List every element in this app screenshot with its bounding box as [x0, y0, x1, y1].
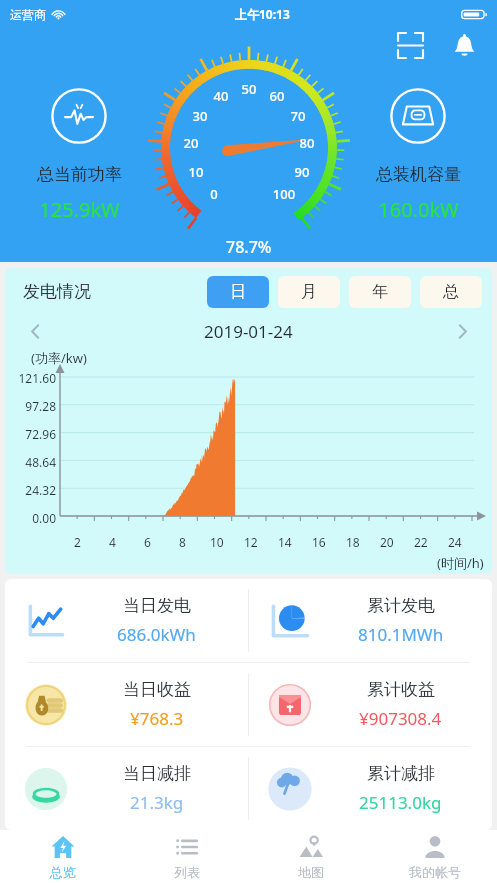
staticText: 地图: [298, 864, 324, 880]
staticText: 2: [74, 534, 81, 550]
staticText: 列表: [174, 864, 200, 880]
staticText: 160.0kW: [378, 196, 459, 223]
staticText: 21.3kg: [130, 791, 184, 814]
staticText: 100: [269, 185, 299, 203]
staticText: 10: [210, 534, 224, 550]
staticText: 18: [346, 534, 360, 550]
staticText: 78.7%: [226, 236, 272, 258]
staticText: 30: [185, 107, 215, 125]
staticText: (功率/kw): [31, 349, 87, 367]
staticText: 4: [109, 534, 116, 550]
staticText: 上午10:13: [235, 6, 290, 22]
button[interactable]: 月: [278, 276, 340, 308]
staticText: 发电情况: [23, 281, 91, 302]
staticText: 14: [278, 534, 292, 550]
staticText: 48.64: [5, 454, 56, 470]
staticText: 当日收益: [123, 679, 191, 700]
button[interactable]: 累计发电: [249, 579, 492, 662]
staticText: 总装机容量: [376, 164, 461, 185]
staticText: 年: [372, 282, 388, 302]
staticText: 121.60: [5, 370, 56, 386]
button[interactable]: Scan QR code: [391, 26, 429, 64]
staticText: 总当前功率: [37, 164, 122, 185]
button[interactable]: 总览: [0, 830, 125, 883]
button[interactable]: 累计收益: [249, 663, 492, 746]
staticText: 24: [448, 534, 462, 550]
staticText: 50: [234, 80, 264, 98]
staticText: 16: [312, 534, 326, 550]
staticText: ¥768.3: [130, 707, 184, 730]
staticText: 2019-01-24: [204, 320, 293, 343]
staticText: 40: [206, 87, 236, 105]
button[interactable]: 累计减排: [249, 747, 492, 830]
staticText: 80: [292, 134, 322, 152]
button[interactable]: 我的帐号: [373, 830, 497, 883]
staticText: 20: [380, 534, 394, 550]
staticText: 810.1MWh: [358, 623, 444, 646]
button[interactable]: Next day: [448, 317, 476, 345]
staticText: 25113.0kg: [359, 791, 442, 814]
button[interactable]: Notifications: [445, 26, 483, 64]
button[interactable]: 日: [207, 276, 269, 308]
button[interactable]: 当日减排: [5, 747, 248, 830]
staticText: 累计收益: [367, 679, 435, 700]
staticText: 686.0kWh: [117, 623, 196, 646]
button[interactable]: 年: [349, 276, 411, 308]
button[interactable]: 列表: [125, 830, 249, 883]
staticText: 0.00: [5, 510, 56, 526]
staticText: 60: [262, 87, 292, 105]
button[interactable]: 当日发电: [5, 579, 248, 662]
button[interactable]: 总: [420, 276, 482, 308]
staticText: 月: [301, 282, 317, 302]
button[interactable]: Previous day: [21, 317, 49, 345]
staticText: 日: [230, 282, 246, 302]
staticText: ¥907308.4: [359, 707, 442, 730]
staticText: 0: [199, 185, 229, 203]
staticText: 90: [287, 163, 317, 181]
staticText: 10: [181, 163, 211, 181]
staticText: 累计减排: [367, 763, 435, 784]
button[interactable]: 地图: [249, 830, 373, 883]
staticText: 12: [244, 534, 258, 550]
staticText: 70: [283, 107, 313, 125]
button[interactable]: 当日收益: [5, 663, 248, 746]
staticText: 当日发电: [123, 595, 191, 616]
staticText: 6: [144, 534, 151, 550]
staticText: (时间/h): [437, 554, 484, 572]
staticText: 累计发电: [367, 595, 435, 616]
staticText: 20: [176, 134, 206, 152]
staticText: 72.96: [5, 426, 56, 442]
staticText: 当日减排: [123, 763, 191, 784]
staticText: 22: [414, 534, 428, 550]
staticText: 我的帐号: [409, 864, 461, 880]
staticText: 24.32: [5, 482, 56, 498]
staticText: 总: [443, 282, 459, 302]
staticText: 97.28: [5, 398, 56, 414]
staticText: 8: [179, 534, 186, 550]
staticText: 运营商: [10, 7, 46, 22]
staticText: 总览: [50, 864, 76, 880]
staticText: 125.9kW: [39, 196, 120, 223]
